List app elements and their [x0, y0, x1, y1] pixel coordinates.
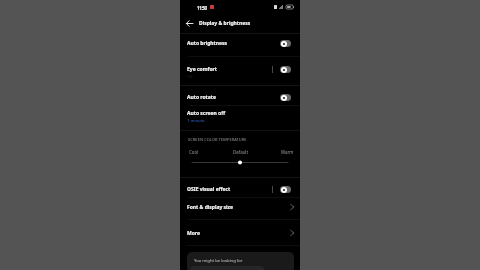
button[interactable]: Auto rotate — [180, 90, 300, 104]
staticText: Warm — [281, 149, 294, 155]
staticText: OSIE visual effect — [187, 186, 231, 193]
staticText: Eye comfort — [187, 66, 217, 73]
staticText: Auto brightness — [187, 40, 228, 47]
staticText: More — [187, 230, 200, 237]
button[interactable]: Screen color temperature slider — [180, 156, 300, 169]
button[interactable]: Auto brightness — [180, 36, 300, 50]
staticText: Cool — [189, 149, 199, 155]
button[interactable]: Toggle Eye comfort — [280, 66, 291, 73]
staticText: Auto rotate — [187, 94, 216, 101]
button[interactable]: Toggle Auto rotate — [280, 94, 291, 101]
staticText: Font & display size — [187, 204, 234, 211]
staticText: You might be looking for — [194, 258, 243, 264]
button[interactable]: Font & display size — [180, 200, 300, 214]
button[interactable]: Toggle Auto brightness — [280, 40, 291, 47]
button[interactable]: More — [180, 226, 300, 240]
staticText: SCREEN COLOR TEMPERATURE — [188, 137, 247, 142]
button[interactable]: You might be looking for — [187, 252, 294, 270]
staticText: 11:50 — [197, 5, 207, 11]
staticText: Display & brightness — [199, 20, 251, 27]
staticText: Auto screen off — [187, 110, 226, 117]
other: Open Font & display size — [289, 204, 295, 210]
button[interactable]: OSIE visual effect — [180, 182, 300, 196]
button[interactable]: Auto screen off — [180, 106, 300, 126]
button[interactable]: Toggle OSIE visual effect — [280, 186, 291, 193]
staticText: Default — [233, 149, 249, 155]
staticText: Off — [187, 74, 193, 79]
button[interactable]: Back — [184, 18, 195, 29]
button[interactable]: Eye comfort — [180, 62, 300, 76]
other: Open More — [289, 230, 295, 236]
staticText: 1 minute — [187, 118, 205, 124]
